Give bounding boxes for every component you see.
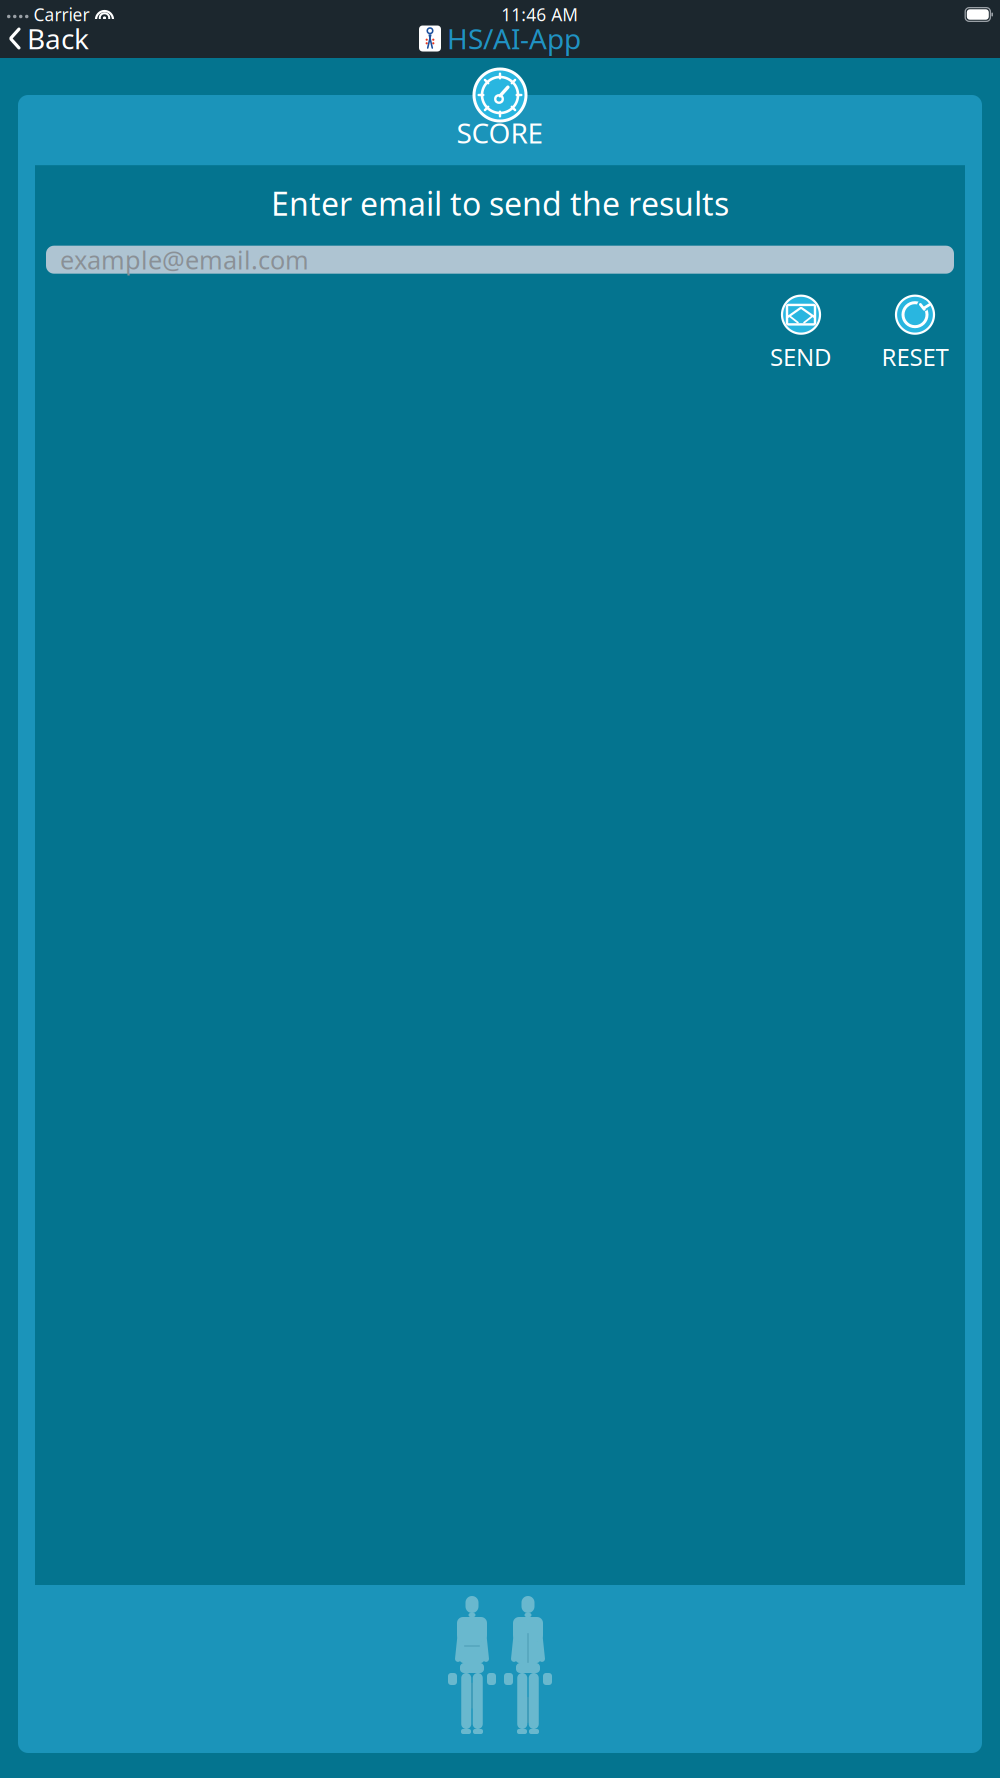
button[interactable]: example@email.com — [46, 246, 954, 274]
staticText: SEND — [770, 341, 832, 373]
button[interactable]: Back — [0, 14, 98, 63]
staticText: 11:46 AM — [501, 3, 578, 26]
staticText: example@email.com — [60, 243, 309, 276]
staticText: SCORE — [456, 114, 543, 151]
staticText: HS/AI-App — [447, 20, 581, 57]
staticText: Carrier — [33, 3, 89, 26]
button[interactable]: Send results by email — [753, 296, 849, 373]
button[interactable]: Reset — [867, 296, 963, 373]
staticText: RESET — [881, 341, 948, 373]
staticText: Back — [27, 20, 89, 57]
staticText: Enter email to send the results — [271, 182, 729, 225]
